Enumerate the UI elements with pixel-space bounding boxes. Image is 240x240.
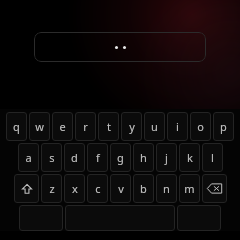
button[interactable]: m [179, 174, 200, 203]
staticText: y [129, 119, 135, 134]
button[interactable]: k [179, 143, 200, 172]
button[interactable]: b [133, 174, 154, 203]
staticText: c [95, 181, 101, 196]
button[interactable]: z [41, 174, 62, 203]
button[interactable]: g [110, 143, 131, 172]
button[interactable]: Enter [177, 205, 221, 231]
button[interactable]: v [110, 174, 131, 203]
button[interactable]: n [156, 174, 177, 203]
staticText: q [13, 119, 20, 134]
button[interactable]: Backspace [202, 174, 227, 203]
button[interactable]: j [156, 143, 177, 172]
button[interactable]: e [52, 112, 73, 141]
button[interactable]: Symbols [19, 205, 63, 231]
button[interactable]: t [98, 112, 119, 141]
button[interactable]: h [133, 143, 154, 172]
button[interactable]: a [18, 143, 39, 172]
staticText: p [220, 119, 227, 134]
button[interactable]: r [75, 112, 96, 141]
button[interactable]: Shift [14, 174, 39, 203]
staticText: o [197, 119, 204, 134]
staticText: b [140, 181, 147, 196]
button[interactable]: s [41, 143, 62, 172]
button[interactable]: Password field [34, 32, 206, 62]
staticText: a [25, 150, 32, 165]
button[interactable]: l [202, 143, 223, 172]
staticText: j [165, 150, 168, 165]
staticText: d [71, 150, 78, 165]
staticText: u [151, 119, 158, 134]
staticText: v [118, 181, 124, 196]
button[interactable]: i [167, 112, 188, 141]
button[interactable]: p [213, 112, 234, 141]
staticText: i [176, 119, 179, 134]
button[interactable]: Space [65, 205, 175, 231]
button[interactable]: u [144, 112, 165, 141]
button[interactable]: c [87, 174, 108, 203]
button[interactable]: y [121, 112, 142, 141]
button[interactable]: q [6, 112, 27, 141]
staticText: r [83, 119, 88, 134]
staticText: k [187, 150, 193, 165]
staticText: f [96, 150, 100, 165]
staticText: w [35, 119, 44, 134]
staticText: h [140, 150, 147, 165]
button[interactable]: f [87, 143, 108, 172]
staticText: x [72, 181, 78, 196]
staticText: m [184, 181, 195, 196]
staticText: l [211, 150, 214, 165]
staticText: s [49, 150, 55, 165]
button[interactable]: o [190, 112, 211, 141]
staticText: t [107, 119, 111, 134]
staticText: e [59, 119, 66, 134]
staticText: g [117, 150, 124, 165]
staticText: z [49, 181, 55, 196]
button[interactable]: x [64, 174, 85, 203]
button[interactable]: d [64, 143, 85, 172]
staticText: n [163, 181, 170, 196]
button[interactable]: w [29, 112, 50, 141]
